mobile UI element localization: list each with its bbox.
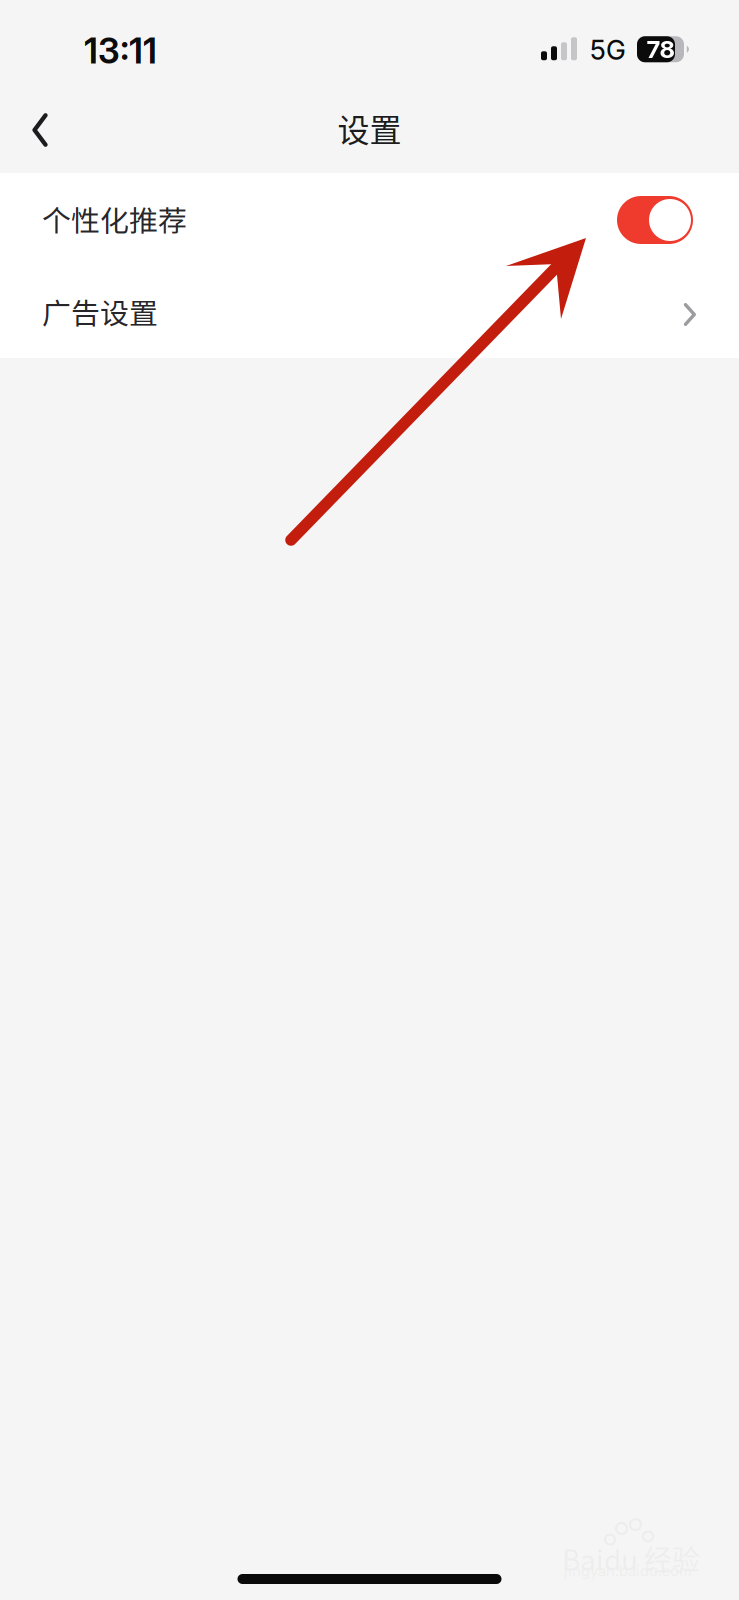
- staticText: 13:11: [84, 30, 157, 72]
- staticText: 5G: [590, 34, 626, 66]
- button[interactable]: 广告设置: [0, 265, 739, 358]
- staticText: 个性化推荐: [42, 198, 187, 240]
- staticText: 78: [646, 35, 674, 64]
- staticText: jingyan.baidu.com: [564, 1562, 692, 1580]
- button[interactable]: 个性化推荐: [0, 173, 739, 265]
- staticText: 设置: [337, 105, 401, 151]
- button[interactable]: Back: [4, 95, 76, 165]
- staticText: 广告设置: [42, 291, 158, 332]
